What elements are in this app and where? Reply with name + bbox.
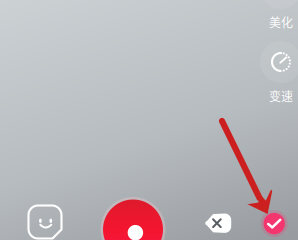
button[interactable]: Delete clip (202, 210, 234, 236)
button[interactable]: 美化 (257, 0, 298, 36)
button[interactable]: Stickers (23, 200, 67, 240)
staticText: 变速 (269, 87, 293, 105)
button[interactable]: Record (99, 195, 167, 240)
staticText: 美化 (269, 13, 293, 31)
button[interactable]: 变速 (257, 52, 298, 104)
button[interactable]: Confirm (259, 209, 289, 239)
